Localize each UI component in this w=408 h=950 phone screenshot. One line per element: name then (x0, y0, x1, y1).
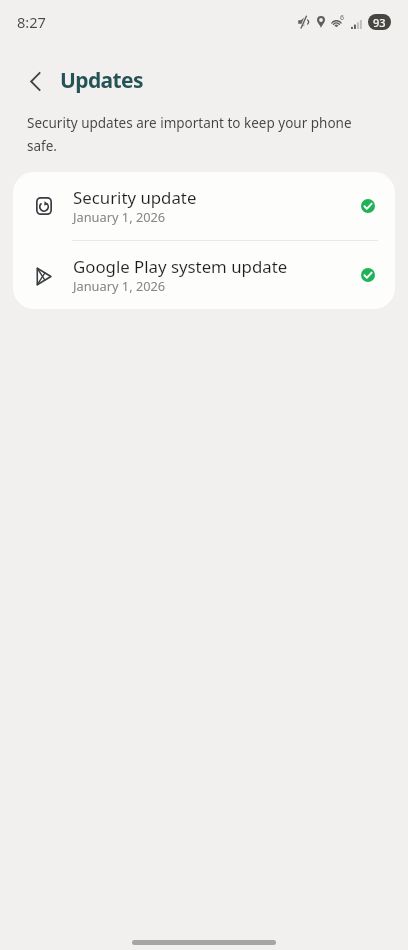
staticText: Updates (60, 66, 143, 95)
staticText: 6 (340, 13, 345, 23)
staticText: January 1, 2026 (73, 208, 166, 225)
staticText: Security update (73, 186, 197, 209)
staticText: January 1, 2026 (73, 277, 166, 294)
staticText: 93 (373, 15, 386, 30)
button[interactable]: Back (17, 63, 53, 99)
button[interactable]: Security update (13, 172, 395, 240)
staticText: 8:27 (17, 12, 46, 32)
staticText: Security updates are important to keep y… (27, 114, 357, 155)
staticText: Google Play system update (73, 255, 288, 278)
button[interactable]: Google Play system update (13, 241, 395, 309)
